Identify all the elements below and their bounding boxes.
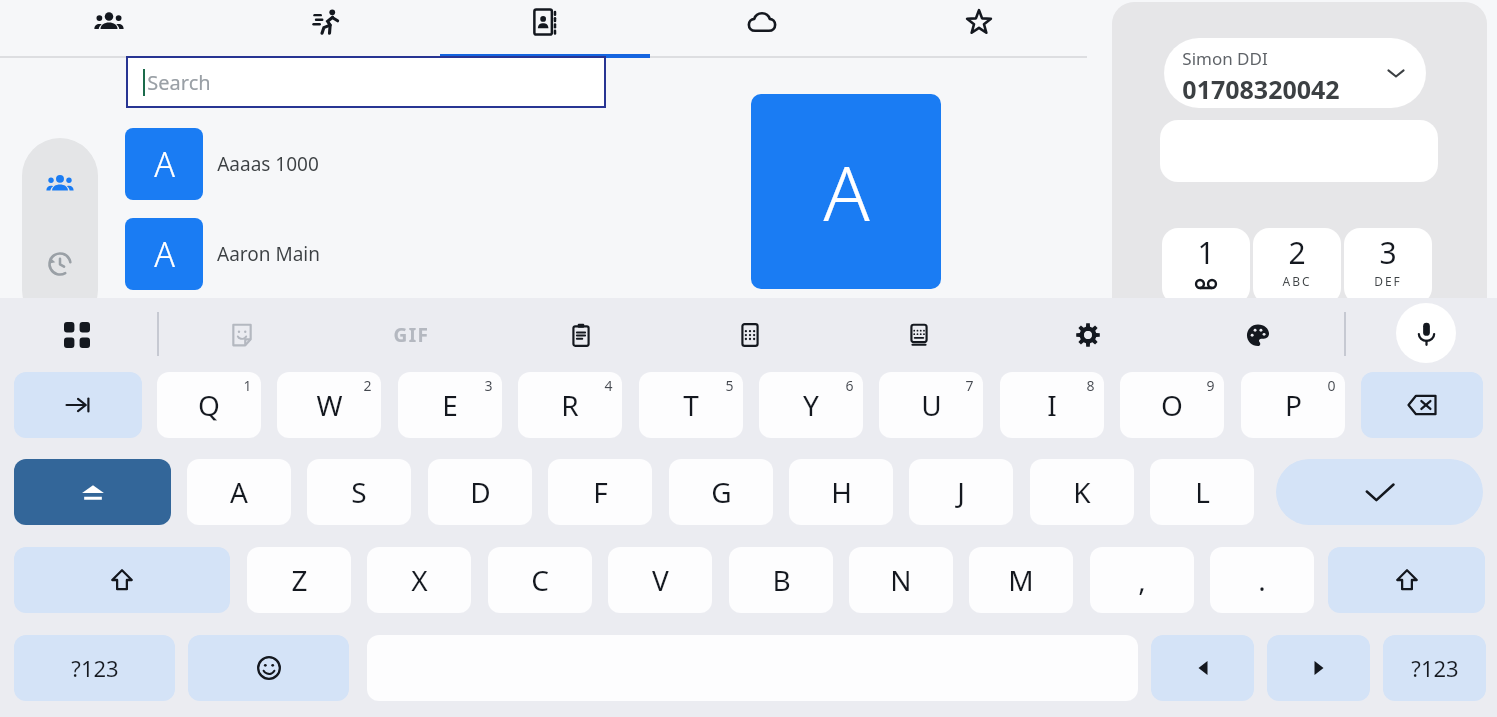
button[interactable]: One handed mode — [890, 306, 948, 364]
staticText: 7 — [965, 376, 974, 395]
button[interactable]: Number pad — [721, 306, 779, 364]
button[interactable]: J — [909, 459, 1013, 525]
button[interactable]: Apps — [48, 306, 106, 364]
staticText: 3 — [1379, 232, 1397, 273]
button[interactable]: Move cursor left — [1151, 635, 1254, 701]
button[interactable]: Move cursor right — [1267, 635, 1370, 701]
staticText: X — [411, 561, 428, 599]
staticText: J — [957, 473, 965, 511]
button[interactable]: Groups — [0, 0, 218, 58]
button[interactable]: C — [488, 547, 592, 613]
staticText: K — [1073, 473, 1091, 511]
staticText: Z — [291, 561, 308, 599]
button[interactable]: Shift — [14, 547, 230, 613]
staticText: D — [470, 473, 491, 511]
staticText: L — [1195, 473, 1210, 511]
staticText: A — [154, 141, 175, 187]
staticText: I — [1047, 386, 1057, 424]
staticText: ABC — [1282, 273, 1312, 289]
staticText: 1 — [243, 376, 252, 395]
button[interactable]: Q — [157, 372, 261, 438]
staticText: 4 — [604, 376, 613, 395]
button[interactable]: A — [751, 94, 941, 289]
button[interactable]: G — [669, 459, 773, 525]
staticText: T — [683, 386, 699, 424]
staticText: 01708320042 — [1182, 72, 1340, 106]
staticText: 5 — [725, 376, 734, 395]
button[interactable]: V — [608, 547, 712, 613]
button[interactable] — [1160, 120, 1438, 182]
staticText: ?123 — [71, 653, 119, 683]
button[interactable]: Recent — [22, 228, 98, 300]
staticText: DEF — [1374, 273, 1402, 289]
button[interactable]: R — [518, 372, 622, 438]
staticText: . — [1258, 561, 1266, 599]
button[interactable]: Contacts — [436, 0, 653, 58]
button[interactable]: Search — [126, 56, 606, 108]
button[interactable]: W — [277, 372, 381, 438]
button[interactable]: D — [428, 459, 532, 525]
button[interactable]: Voice input — [1396, 303, 1456, 363]
button[interactable]: F — [548, 459, 652, 525]
button[interactable]: I — [1000, 372, 1104, 438]
staticText: M — [1008, 561, 1034, 599]
button[interactable]: Settings — [1059, 306, 1117, 364]
button[interactable]: , — [1090, 547, 1194, 613]
staticText: H — [831, 473, 852, 511]
button[interactable]: A — [125, 218, 625, 290]
staticText: 2 — [1288, 232, 1306, 273]
button[interactable]: 2 — [1253, 228, 1341, 300]
button[interactable]: . — [1210, 547, 1314, 613]
staticText: G — [711, 473, 732, 511]
staticText: 3 — [484, 376, 493, 395]
staticText: GIF — [393, 322, 430, 348]
button[interactable]: T — [639, 372, 743, 438]
button[interactable]: Shift — [1328, 547, 1485, 613]
button[interactable]: O — [1120, 372, 1224, 438]
button[interactable]: Enter — [1276, 459, 1483, 525]
staticText: A — [230, 473, 248, 511]
button[interactable]: Activity — [218, 0, 436, 58]
button[interactable]: M — [969, 547, 1073, 613]
staticText: Search — [147, 69, 211, 96]
button[interactable]: Emoji — [188, 635, 349, 701]
button[interactable]: E — [398, 372, 502, 438]
button[interactable]: Backspace — [1361, 372, 1483, 438]
button[interactable]: B — [729, 547, 833, 613]
button[interactable]: Stickers — [213, 306, 271, 364]
button[interactable]: ?123 — [1383, 635, 1486, 701]
button[interactable]: Tab — [14, 372, 142, 438]
staticText: C — [531, 561, 549, 599]
button[interactable]: ?123 — [14, 635, 175, 701]
button[interactable]: A — [187, 459, 291, 525]
button[interactable]: Z — [247, 547, 351, 613]
button[interactable]: Caps lock — [14, 459, 171, 525]
staticText: 9 — [1206, 376, 1215, 395]
staticText: Simon DDI — [1182, 47, 1268, 70]
button[interactable]: Y — [759, 372, 863, 438]
staticText: R — [561, 386, 579, 424]
button[interactable]: U — [879, 372, 983, 438]
staticText: 0 — [1327, 376, 1336, 395]
button[interactable]: 1 — [1162, 228, 1250, 300]
button[interactable]: Simon DDI — [1164, 38, 1426, 108]
button[interactable]: K — [1030, 459, 1134, 525]
button[interactable]: L — [1150, 459, 1254, 525]
button[interactable]: Cloud — [653, 0, 870, 58]
button[interactable]: 3 — [1344, 228, 1432, 300]
staticText: P — [1285, 386, 1302, 424]
button[interactable]: P — [1241, 372, 1345, 438]
button[interactable]: H — [789, 459, 893, 525]
staticText: W — [316, 386, 343, 424]
button[interactable]: Favourites — [870, 0, 1087, 58]
button[interactable]: Contacts — [22, 148, 98, 220]
button[interactable]: Clipboard — [552, 306, 610, 364]
button[interactable]: Theme — [1229, 306, 1287, 364]
button[interactable]: GIF — [382, 306, 440, 364]
staticText: , — [1138, 561, 1146, 599]
button[interactable]: A — [125, 128, 625, 200]
button[interactable]: S — [307, 459, 411, 525]
button[interactable]: N — [849, 547, 953, 613]
button[interactable]: X — [367, 547, 471, 613]
